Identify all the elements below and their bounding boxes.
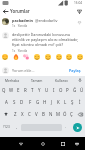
button[interactable]: J: [48, 96, 55, 108]
button[interactable]: W: [8, 84, 15, 96]
staticText: Z: [14, 111, 17, 117]
staticText: @endodarliv: [35, 18, 58, 23]
staticText: Tamam: [31, 78, 43, 82]
staticText: P: [66, 87, 69, 93]
staticText: R: [24, 87, 27, 93]
staticText: Ö: [63, 111, 67, 117]
button[interactable]: İ: [76, 96, 83, 108]
button[interactable]: Emoji: [65, 54, 73, 60]
staticText: N: [49, 111, 53, 117]
button[interactable]: D: [18, 96, 26, 108]
button[interactable]: Backspace: [75, 108, 85, 120]
staticText: 16:04: [74, 1, 83, 5]
staticText: B: [42, 111, 45, 117]
button[interactable]: Z: [11, 108, 19, 120]
staticText: I: [53, 87, 55, 93]
staticText: .: [65, 124, 67, 130]
button[interactable]: Emoji: [1, 54, 9, 60]
button[interactable]: Emoji: [76, 54, 84, 60]
button[interactable]: Merhaba: [0, 76, 24, 84]
button[interactable]: Emoji: [22, 54, 30, 60]
button[interactable]: Back: [15, 137, 27, 150]
button[interactable]: N: [47, 108, 54, 120]
button[interactable]: H: [41, 96, 48, 108]
button[interactable]: Shift: [0, 108, 11, 120]
button[interactable]: U: [43, 84, 50, 96]
staticText: A: [5, 99, 8, 105]
staticText: K: [57, 99, 60, 105]
button[interactable]: A: [2, 96, 10, 108]
staticText: ?123: [3, 125, 10, 129]
staticText: 1s Yanıtla: [12, 24, 28, 28]
button[interactable]: S: [10, 96, 18, 108]
staticText: 1s Yanıtla: [12, 49, 28, 53]
staticText: ,: [16, 124, 18, 130]
button[interactable]: Tamam: [24, 76, 49, 84]
button[interactable]: Q: [0, 84, 8, 96]
staticText: Merhaba: [5, 78, 19, 82]
button[interactable]: ?123: [0, 120, 13, 134]
button[interactable]: Share: [74, 6, 85, 16]
staticText: M: [56, 111, 60, 117]
staticText: E: [17, 87, 20, 93]
button[interactable]: Emoji: [33, 54, 41, 60]
staticText: W: [9, 87, 14, 93]
button[interactable]: Home: [37, 137, 49, 150]
staticText: Kullanıcı: [55, 78, 68, 82]
button[interactable]: Ö: [61, 108, 68, 120]
button[interactable]: Ş: [69, 96, 76, 108]
button[interactable]: Emoji: [55, 54, 63, 60]
staticText: Paylaş: [69, 68, 81, 73]
button[interactable]: Hide keyboard: [71, 137, 83, 150]
staticText: Ç: [70, 111, 73, 117]
button[interactable]: Ü: [78, 84, 85, 96]
button[interactable]: L: [62, 96, 69, 108]
button[interactable]: G: [34, 96, 41, 108]
button[interactable]: V: [33, 108, 40, 120]
button[interactable]: K: [55, 96, 62, 108]
staticText: Q: [2, 87, 6, 93]
staticText: Yorumlar: [10, 8, 30, 14]
button[interactable]: X: [19, 108, 26, 120]
staticText: Y: [38, 87, 41, 93]
button[interactable]: Like: [76, 18, 83, 26]
button[interactable]: P: [64, 84, 71, 96]
staticText: O: [59, 87, 63, 93]
button[interactable]: ,: [13, 120, 21, 134]
staticText: pacbadmin: [12, 18, 34, 23]
button[interactable]: Ç: [68, 108, 75, 120]
button[interactable]: Kullanıcı: [49, 76, 74, 84]
button[interactable]: Paylaş: [67, 66, 83, 75]
staticText: V: [35, 111, 38, 117]
button[interactable]: Emoji: [44, 54, 52, 60]
staticText: D: [20, 99, 24, 105]
button[interactable]: Back: [0, 6, 10, 16]
button[interactable]: M: [54, 108, 61, 120]
button[interactable]: O: [57, 84, 64, 96]
button[interactable]: Y: [36, 84, 43, 96]
button[interactable]: R: [22, 84, 29, 96]
staticText: H: [43, 99, 47, 105]
staticText: G: [36, 99, 40, 105]
staticText: U: [45, 87, 49, 93]
staticText: S: [13, 99, 16, 105]
button[interactable]: E: [15, 84, 22, 96]
staticText: Ğ: [73, 87, 77, 93]
button[interactable]: Emoji: [12, 54, 20, 60]
staticText: T: [31, 87, 34, 93]
button[interactable]: F: [26, 96, 34, 108]
button[interactable]: Send: [73, 123, 82, 132]
button[interactable]: B: [40, 108, 47, 120]
staticText: F: [29, 99, 32, 105]
staticText: J: [51, 99, 53, 105]
staticText: Yorum ekle...: [12, 68, 67, 73]
button[interactable]: Voice input: [74, 76, 85, 84]
staticText: C: [28, 111, 31, 117]
button[interactable]: T: [29, 84, 36, 96]
button[interactable]: Recents: [57, 137, 69, 150]
button[interactable]: I: [50, 84, 57, 96]
button[interactable]: Ğ: [71, 84, 78, 96]
button[interactable]: C: [26, 108, 33, 120]
